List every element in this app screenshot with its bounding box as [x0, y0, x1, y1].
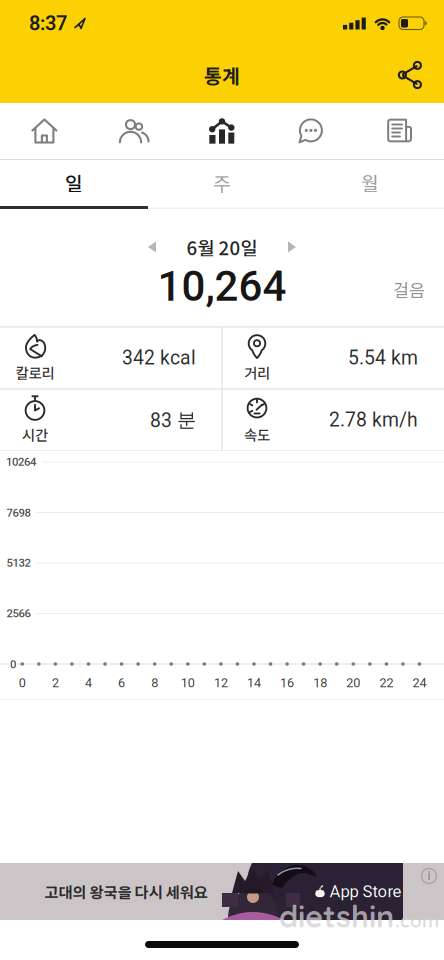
staticText: 22: [379, 676, 393, 690]
staticText: dietshin: [279, 897, 394, 935]
staticText: 6월 20일: [186, 233, 257, 260]
button[interactable]: 뉴스: [355, 103, 444, 159]
staticText: 10: [181, 676, 195, 690]
staticText: 83 분: [150, 408, 196, 432]
staticText: 14: [247, 676, 261, 690]
staticText: 16: [280, 676, 294, 690]
button[interactable]: 이전 날짜: [137, 232, 167, 262]
button[interactable]: 주: [148, 160, 296, 205]
staticText: 통계: [204, 61, 240, 89]
staticText: .com: [395, 909, 439, 932]
staticText: 2.78 km/h: [329, 409, 418, 431]
staticText: 일: [65, 168, 83, 196]
button[interactable]: 통계: [178, 103, 266, 159]
button[interactable]: 다음 날짜: [277, 232, 307, 262]
staticText: 속도: [244, 424, 270, 445]
staticText: 12: [214, 676, 228, 690]
staticText: 5132: [6, 556, 30, 570]
staticText: 4: [85, 676, 92, 690]
button[interactable]: 친구: [89, 103, 178, 159]
button[interactable]: 월: [296, 160, 444, 205]
staticText: 월: [361, 168, 379, 196]
staticText: 0: [19, 676, 26, 690]
staticText: 0: [10, 658, 16, 671]
staticText: 10264: [6, 455, 36, 469]
staticText: 8: [151, 676, 158, 690]
staticText: 6: [118, 676, 125, 690]
staticText: 342 kcal: [122, 347, 196, 369]
staticText: 7698: [6, 506, 30, 520]
staticText: 칼로리: [15, 362, 54, 383]
staticText: 고대의 왕국을 다시 세워요: [44, 880, 207, 903]
staticText: App Store: [329, 882, 401, 901]
staticText: 18: [313, 676, 327, 690]
staticText: 10,264: [157, 262, 286, 311]
staticText: 5.54 km: [348, 347, 418, 369]
staticText: i: [427, 869, 430, 883]
button[interactable]: 광고: [0, 863, 444, 920]
button[interactable]: 홈: [0, 103, 89, 159]
staticText: 24: [412, 676, 426, 690]
staticText: 주: [213, 168, 231, 196]
button[interactable]: 일: [0, 160, 148, 205]
staticText: 거리: [244, 362, 270, 383]
staticText: 2: [52, 676, 59, 690]
staticText: 걸음: [393, 277, 425, 302]
staticText: 8:37: [29, 12, 67, 35]
button[interactable]: 공유: [388, 50, 432, 100]
staticText: 20: [346, 676, 360, 690]
button[interactable]: 채팅: [266, 103, 355, 159]
staticText: 시간: [22, 424, 48, 445]
staticText: 2566: [6, 607, 30, 620]
